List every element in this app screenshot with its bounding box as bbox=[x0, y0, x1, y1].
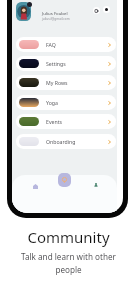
button[interactable]: Profile photo bbox=[16, 2, 31, 21]
button[interactable]: Events bbox=[16, 114, 116, 129]
button[interactable]: Settings bbox=[103, 6, 110, 13]
staticText: Onboarding bbox=[46, 138, 76, 145]
button[interactable]: Home bbox=[30, 181, 40, 191]
button[interactable]: Ideas bbox=[58, 173, 71, 187]
staticText: Settings bbox=[46, 60, 66, 67]
button[interactable]: Log out bbox=[93, 7, 100, 14]
staticText: My Rows bbox=[46, 79, 68, 86]
staticText: Yoga bbox=[46, 99, 58, 106]
button[interactable]: FAQ bbox=[16, 37, 116, 52]
staticText: Community bbox=[27, 227, 110, 247]
staticText: Talk and learn with other people bbox=[11, 251, 126, 276]
staticText: Events bbox=[46, 118, 63, 125]
button[interactable]: Yoga bbox=[16, 95, 116, 110]
button[interactable]: Settings bbox=[16, 56, 116, 71]
staticText: julius.f@gmail.com bbox=[42, 17, 70, 21]
button[interactable]: Profile bbox=[91, 180, 101, 190]
staticText: FAQ bbox=[46, 41, 56, 48]
button[interactable]: My Rows bbox=[16, 75, 116, 90]
button[interactable]: Onboarding bbox=[16, 134, 116, 149]
staticText: Julius Foubel bbox=[42, 10, 68, 16]
